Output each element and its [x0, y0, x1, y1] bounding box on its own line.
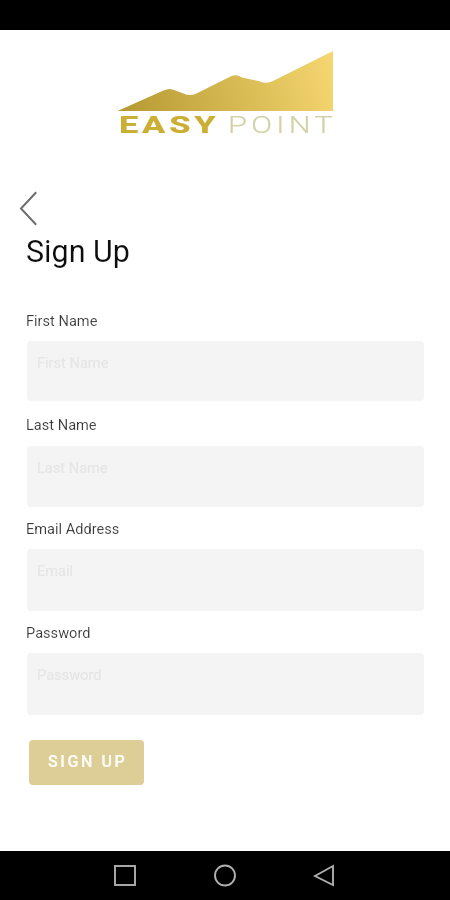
staticText: Email Address — [26, 520, 120, 537]
staticText: Password — [26, 624, 91, 641]
button[interactable]: Back — [300, 856, 348, 895]
button[interactable]: SIGN UP — [29, 740, 144, 785]
staticText: First Name — [37, 354, 109, 371]
staticText: Password — [37, 666, 102, 683]
staticText: EASY — [119, 112, 220, 139]
button[interactable]: Back — [6, 186, 50, 230]
staticText: Email — [37, 562, 74, 579]
button[interactable]: Recent apps — [101, 856, 149, 895]
button[interactable]: Home — [201, 856, 249, 895]
staticText: Sign Up — [26, 234, 130, 270]
staticText: POINT — [228, 112, 337, 139]
staticText: Last Name — [26, 416, 97, 433]
staticText: Last Name — [37, 459, 108, 476]
staticText: SIGN UP — [48, 752, 128, 771]
staticText: First Name — [26, 312, 98, 329]
